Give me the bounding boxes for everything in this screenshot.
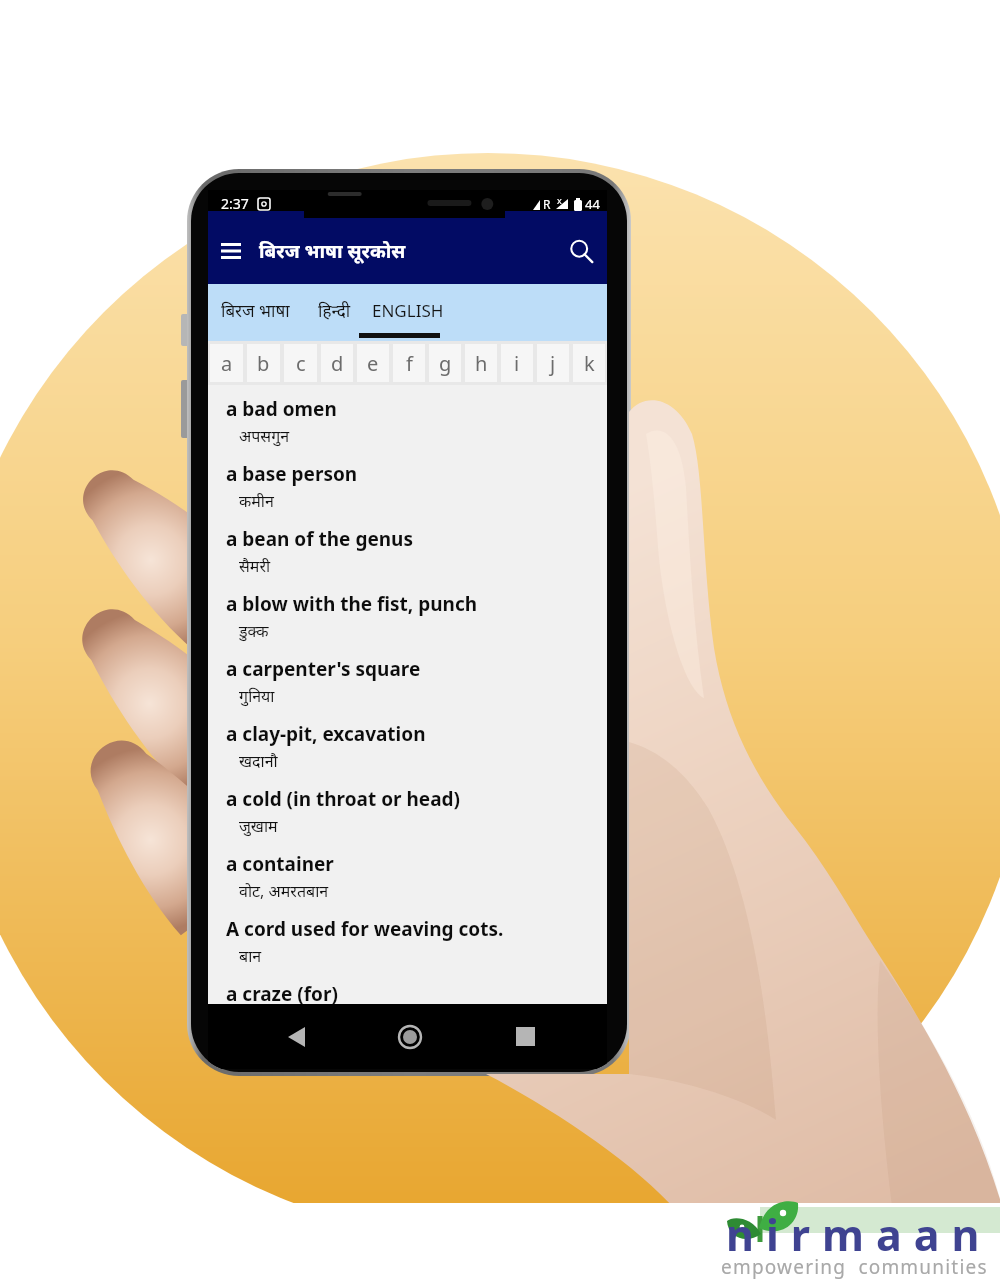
staticText: a: [221, 350, 233, 377]
button[interactable]: h: [465, 344, 497, 382]
staticText: बान: [239, 945, 262, 967]
button[interactable]: Open navigation menu: [211, 231, 251, 271]
button[interactable]: Recent apps: [495, 1004, 555, 1069]
staticText: R: [543, 196, 551, 212]
staticText: a clay-pit, excavation: [226, 721, 426, 747]
button[interactable]: a blow with the fist, punch: [208, 591, 607, 656]
staticText: खदानौ: [239, 750, 278, 772]
staticText: a cold (in throat or head): [226, 786, 461, 812]
staticText: empowering communities: [721, 1254, 988, 1280]
button[interactable]: a craze (for): [208, 981, 607, 1004]
staticText: A cord used for weaving cots.: [226, 916, 504, 942]
staticText: जुखाम: [239, 815, 278, 837]
staticText: h: [475, 350, 488, 377]
button[interactable]: a base person: [208, 461, 607, 526]
staticText: बिरज भाषा सूरकोस: [259, 238, 406, 264]
staticText: j: [550, 350, 556, 377]
button[interactable]: a clay-pit, excavation: [208, 721, 607, 786]
button[interactable]: a bad omen: [208, 396, 607, 461]
button[interactable]: k: [573, 344, 605, 382]
staticText: nirmaan: [726, 1205, 992, 1264]
staticText: a craze (for): [226, 981, 338, 1004]
button[interactable]: a carpenter's square: [208, 656, 607, 721]
button[interactable]: Search: [559, 229, 603, 273]
staticText: डुक्क: [239, 620, 269, 642]
staticText: a bad omen: [226, 396, 337, 422]
staticText: 2:37: [221, 194, 249, 213]
staticText: i: [514, 350, 520, 377]
staticText: g: [439, 350, 452, 377]
staticText: ENGLISH: [372, 299, 444, 322]
button[interactable]: g: [429, 344, 461, 382]
staticText: वोट, अमरतबान: [239, 880, 329, 902]
button[interactable]: b: [247, 344, 280, 382]
button[interactable]: d: [321, 344, 353, 382]
staticText: d: [331, 350, 344, 377]
button[interactable]: c: [284, 344, 317, 382]
staticText: a base person: [226, 461, 358, 487]
staticText: k: [584, 350, 595, 377]
button[interactable]: बिरज भाषा: [208, 284, 302, 341]
staticText: अपसगुन: [239, 425, 290, 447]
button[interactable]: f: [393, 344, 425, 382]
button[interactable]: j: [537, 344, 569, 382]
staticText: a bean of the genus: [226, 526, 413, 552]
staticText: बिरज भाषा: [221, 299, 290, 322]
staticText: e: [367, 350, 379, 377]
button[interactable]: e: [357, 344, 389, 382]
button[interactable]: a cold (in throat or head): [208, 786, 607, 851]
button[interactable]: ENGLISH: [366, 284, 450, 341]
staticText: 44: [585, 195, 600, 213]
staticText: f: [406, 350, 413, 377]
button[interactable]: A cord used for weaving cots.: [208, 916, 607, 981]
button[interactable]: Home: [380, 1004, 440, 1069]
button[interactable]: Back: [266, 1004, 326, 1069]
staticText: हिन्दी: [318, 299, 351, 322]
staticText: a carpenter's square: [226, 656, 421, 682]
staticText: a container: [226, 851, 334, 877]
button[interactable]: a bean of the genus: [208, 526, 607, 591]
button[interactable]: a container: [208, 851, 607, 916]
staticText: सैमरी: [239, 555, 271, 577]
staticText: a blow with the fist, punch: [226, 591, 478, 617]
staticText: c: [296, 350, 306, 377]
staticText: b: [257, 350, 270, 377]
button[interactable]: i: [501, 344, 533, 382]
staticText: गुनिया: [239, 685, 275, 707]
staticText: कमीन: [239, 490, 274, 512]
button[interactable]: हिन्दी: [302, 284, 366, 341]
button[interactable]: a: [210, 344, 243, 382]
staticText: x: [557, 194, 562, 206]
